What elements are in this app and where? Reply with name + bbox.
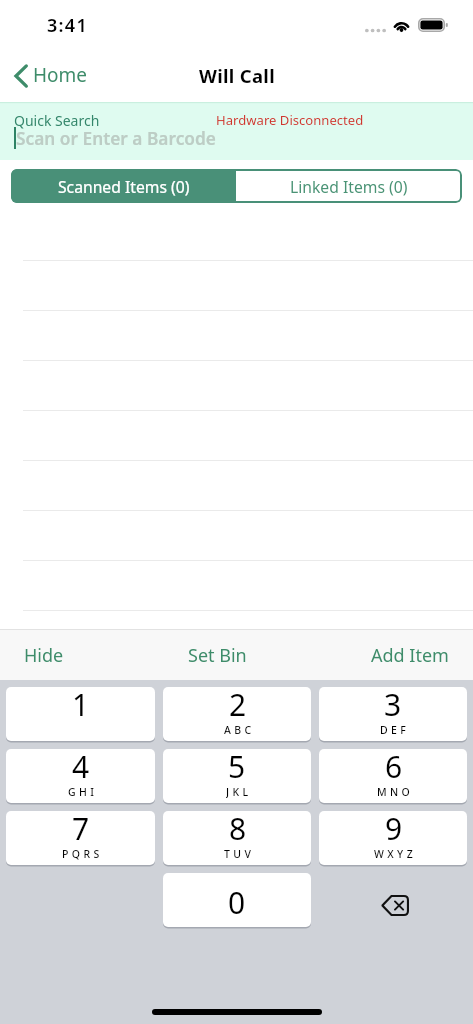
button[interactable]: 1 <box>6 687 155 741</box>
staticText: 7 <box>72 811 90 849</box>
button[interactable]: Linked Items (0) <box>236 169 462 203</box>
staticText: 3 <box>384 687 402 725</box>
staticText: Add Item <box>371 643 449 668</box>
staticText: Scan or Enter a Barcode <box>16 127 216 151</box>
staticText: 9 <box>385 811 403 849</box>
staticText: Set Bin <box>188 643 247 668</box>
staticText: Scanned Items (0) <box>58 176 190 197</box>
button[interactable]: 7 <box>6 811 155 865</box>
button[interactable]: 5 <box>163 749 311 803</box>
staticText: WXYZ <box>374 847 417 860</box>
staticText: 8 <box>229 811 247 849</box>
button[interactable]: 0 <box>163 873 311 927</box>
button[interactable]: 4 <box>6 749 155 803</box>
staticText: Linked Items (0) <box>290 176 408 197</box>
staticText: 6 <box>385 749 403 787</box>
button[interactable]: 2 <box>163 687 311 741</box>
staticText: MNO <box>377 785 414 798</box>
staticText: ABC <box>224 723 255 736</box>
button[interactable]: Hide <box>12 633 76 678</box>
button[interactable]: 8 <box>163 811 311 865</box>
staticText: Quick Search <box>14 111 100 130</box>
staticText: 3:41 <box>47 13 89 38</box>
staticText: Home <box>33 62 88 88</box>
staticText: GHI <box>68 785 98 798</box>
button[interactable]: 6 <box>319 749 467 803</box>
staticText: JKL <box>226 785 252 798</box>
staticText: 4 <box>72 749 90 787</box>
staticText: PQRS <box>62 847 103 860</box>
staticText: 5 <box>228 749 246 787</box>
button[interactable]: Back to Home <box>0 57 98 95</box>
button[interactable]: 9 <box>319 811 467 865</box>
button[interactable]: Quick Search <box>0 102 473 160</box>
staticText: 0 <box>228 882 246 923</box>
staticText: Will Call <box>199 63 275 88</box>
button[interactable]: Add Item <box>359 633 461 678</box>
staticText: 1 <box>72 687 90 725</box>
staticText: 2 <box>229 687 247 725</box>
staticText: Hardware Disconnected <box>216 111 364 129</box>
button[interactable]: 3 <box>319 687 467 741</box>
staticText: TUV <box>224 847 255 860</box>
button[interactable]: Backspace <box>319 873 467 927</box>
staticText: DEF <box>380 723 410 736</box>
button[interactable]: Scanned Items (0) <box>11 169 236 203</box>
staticText: Hide <box>24 643 64 668</box>
button[interactable]: Set Bin <box>176 633 259 678</box>
